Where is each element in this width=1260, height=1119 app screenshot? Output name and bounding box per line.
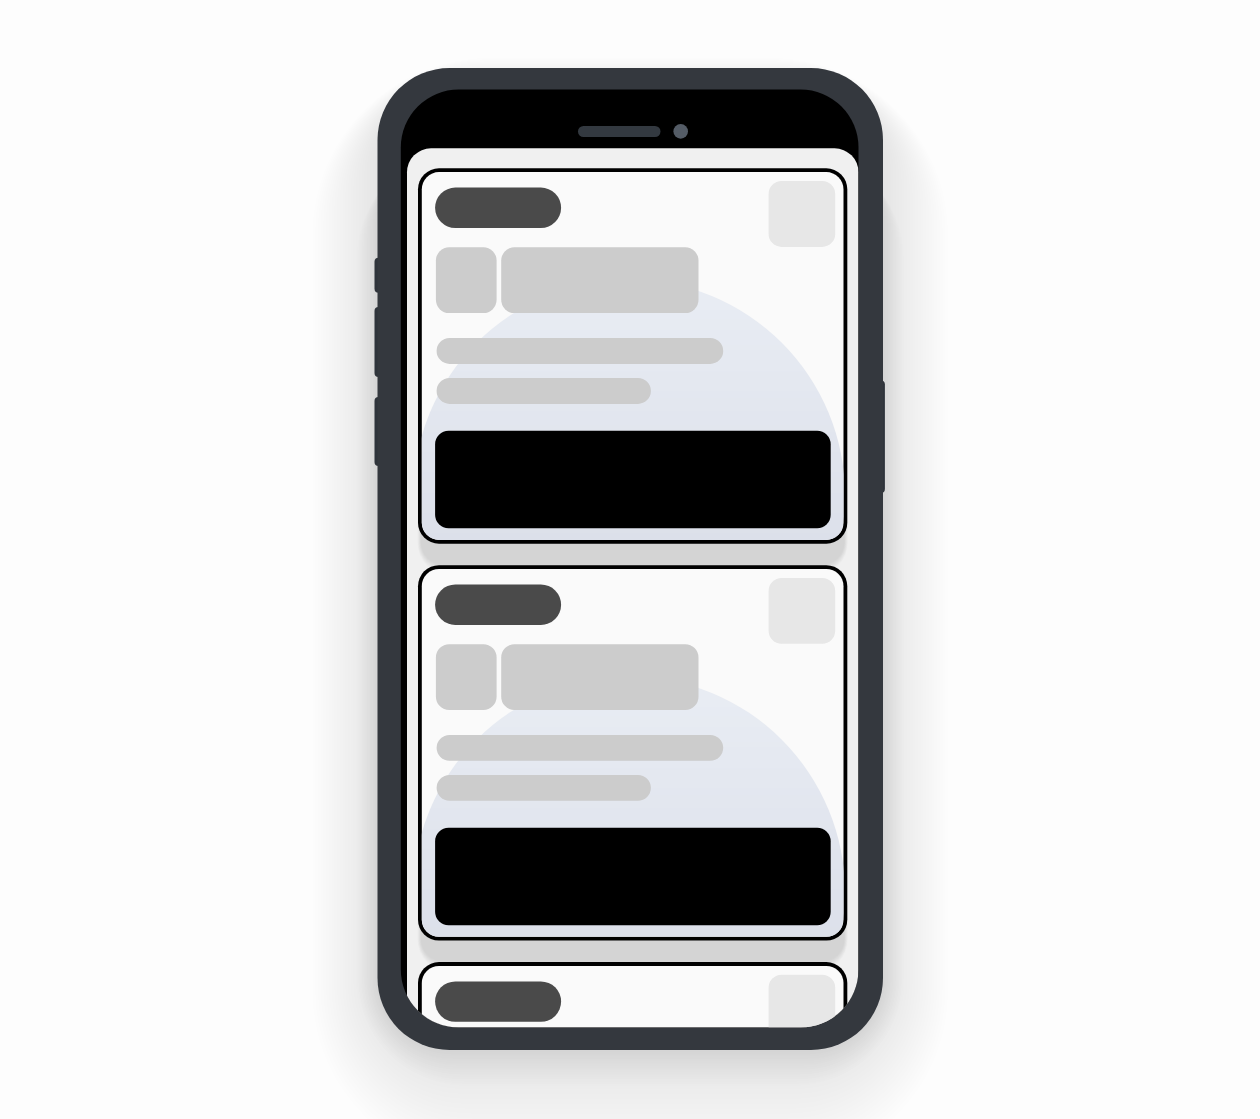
button[interactable]: Silent switch <box>375 258 393 293</box>
button[interactable] <box>418 565 847 940</box>
button[interactable]: Power <box>870 380 885 493</box>
button[interactable] <box>418 962 847 1027</box>
button[interactable]: Volume up <box>375 307 393 377</box>
button[interactable]: Volume down <box>375 397 393 466</box>
button[interactable] <box>418 168 847 543</box>
